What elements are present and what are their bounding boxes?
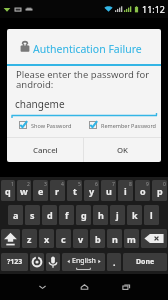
staticText: OK: [117, 145, 129, 156]
button[interactable]: Done: [123, 253, 167, 271]
staticText: t: [73, 185, 77, 197]
staticText: 7: [112, 181, 115, 188]
staticText: n: [112, 233, 118, 245]
button[interactable]: Show Password: [19, 120, 86, 130]
staticText: 1: [11, 181, 14, 188]
button[interactable]: q: [1, 180, 15, 201]
button[interactable]: OK: [84, 138, 161, 162]
staticText: g: [81, 209, 87, 221]
staticText: k: [132, 209, 138, 221]
button[interactable]: w: [17, 180, 31, 201]
button[interactable]: m: [124, 229, 139, 248]
staticText: 5: [78, 181, 81, 188]
staticText: w: [20, 185, 28, 197]
staticText: z: [27, 233, 32, 245]
staticText: s: [30, 209, 35, 221]
button[interactable]: Shift: [1, 229, 20, 248]
staticText: l: [150, 209, 153, 221]
staticText: a: [13, 209, 19, 221]
button[interactable]: e: [33, 180, 48, 201]
staticText: changeme: [15, 97, 65, 111]
staticText: h: [98, 209, 104, 221]
button[interactable]: z: [22, 229, 37, 248]
button[interactable]: k: [127, 205, 142, 225]
button[interactable]: Backspace: [141, 229, 167, 248]
staticText: 8: [129, 181, 132, 188]
button[interactable]: y: [84, 180, 99, 201]
staticText: .: [113, 256, 116, 268]
button[interactable]: Voice input: [46, 253, 60, 271]
staticText: p: [157, 185, 163, 197]
button[interactable]: p: [152, 180, 167, 201]
button[interactable]: s: [25, 205, 40, 225]
staticText: 3: [44, 181, 47, 188]
staticText: j: [116, 209, 119, 221]
staticText: c: [61, 233, 66, 245]
staticText: u: [106, 185, 112, 197]
button[interactable]: x: [39, 229, 54, 248]
staticText: Cancel: [33, 145, 58, 156]
staticText: r: [55, 185, 60, 197]
staticText: 11:12: [142, 3, 166, 15]
button[interactable]: Back: [21, 274, 63, 300]
button[interactable]: Recent apps: [105, 274, 147, 300]
button[interactable]: t: [67, 180, 82, 201]
button[interactable]: j: [110, 205, 125, 225]
staticText: 0: [163, 181, 166, 188]
staticText: 2: [27, 181, 30, 188]
staticText: ?123: [7, 257, 23, 267]
staticText: m: [127, 233, 136, 245]
button[interactable]: r: [50, 180, 65, 201]
button[interactable]: i: [118, 180, 133, 201]
staticText: q: [5, 185, 11, 197]
staticText: Authentication Failure: [33, 42, 142, 56]
button[interactable]: u: [101, 180, 116, 201]
staticText: b: [95, 233, 101, 245]
button[interactable]: l: [144, 205, 159, 225]
button[interactable]: v: [73, 229, 88, 248]
button[interactable]: c: [56, 229, 71, 248]
staticText: v: [78, 233, 84, 245]
button[interactable]: a: [8, 205, 23, 225]
button[interactable]: Remember Password: [89, 120, 161, 130]
button[interactable]: d: [42, 205, 57, 225]
staticText: Remember Password: [101, 122, 156, 129]
button[interactable]: Space: [62, 253, 105, 271]
button[interactable]: .: [107, 253, 121, 271]
button[interactable]: f: [59, 205, 74, 225]
button[interactable]: Home: [63, 274, 105, 300]
button[interactable]: Input options: [30, 253, 44, 271]
staticText: i: [124, 185, 127, 197]
staticText: d: [47, 209, 53, 221]
staticText: 4: [61, 181, 64, 188]
button[interactable]: g: [76, 205, 91, 225]
staticText: 6: [95, 181, 98, 188]
staticText: 9: [146, 181, 149, 188]
button[interactable]: h: [93, 205, 108, 225]
staticText: Show Password: [31, 122, 72, 129]
staticText: Please enter the password for android:: [16, 68, 150, 91]
staticText: o: [140, 185, 146, 197]
staticText: x: [44, 233, 50, 245]
button[interactable]: Cancel: [7, 138, 83, 162]
staticText: e: [38, 185, 44, 197]
staticText: f: [65, 209, 69, 221]
staticText: English: [72, 256, 96, 266]
staticText: y: [89, 185, 95, 197]
button[interactable]: n: [107, 229, 122, 248]
button[interactable]: o: [135, 180, 150, 201]
other: Secure: [20, 41, 30, 52]
button[interactable]: b: [90, 229, 105, 248]
button[interactable]: ?123: [1, 253, 28, 271]
staticText: Done: [136, 257, 155, 267]
